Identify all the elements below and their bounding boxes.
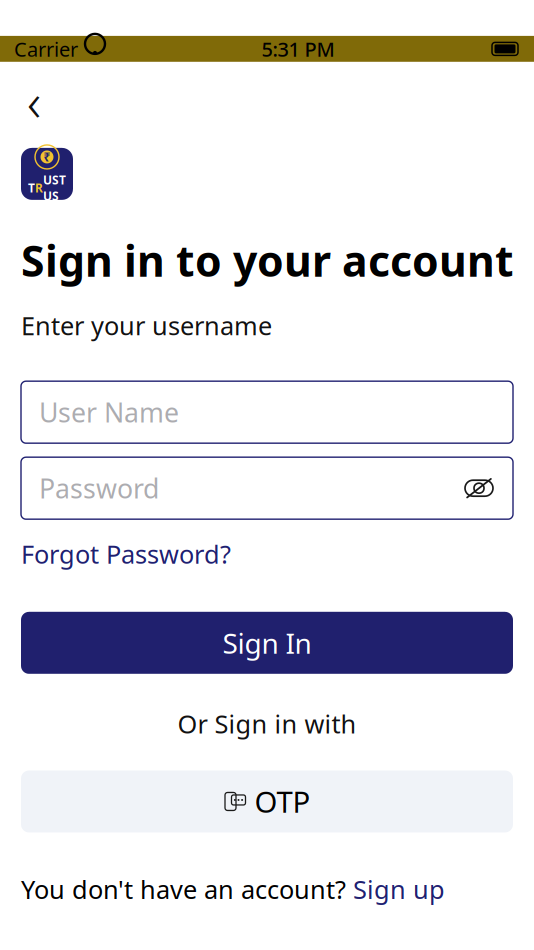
staticText: Or Sign in with (177, 707, 356, 740)
staticText: 5:31 PM (261, 36, 334, 62)
staticText: User Name (39, 394, 179, 430)
staticText: Sign In (222, 624, 311, 661)
button[interactable]: Forgot Password? (0, 519, 231, 575)
staticText: R (35, 180, 43, 196)
staticText: OTP (254, 782, 310, 821)
button[interactable]: OTP (0, 740, 534, 832)
staticText: ‹ (27, 65, 41, 136)
staticText: Password (39, 470, 159, 506)
staticText: UST US (43, 172, 66, 204)
staticText: Sign up (353, 872, 445, 906)
staticText: ₹ (43, 149, 50, 165)
button[interactable]: Sign up (353, 872, 445, 906)
button[interactable]: Back (0, 62, 47, 126)
button[interactable]: Sign In (0, 575, 534, 674)
staticText: Carrier (14, 36, 78, 62)
staticText: T (28, 180, 35, 196)
staticText: Forgot Password? (21, 537, 231, 571)
staticText: Sign in to your account (21, 232, 514, 289)
staticText: Enter your username (21, 308, 272, 342)
staticText: You don't have an account? (21, 872, 353, 906)
